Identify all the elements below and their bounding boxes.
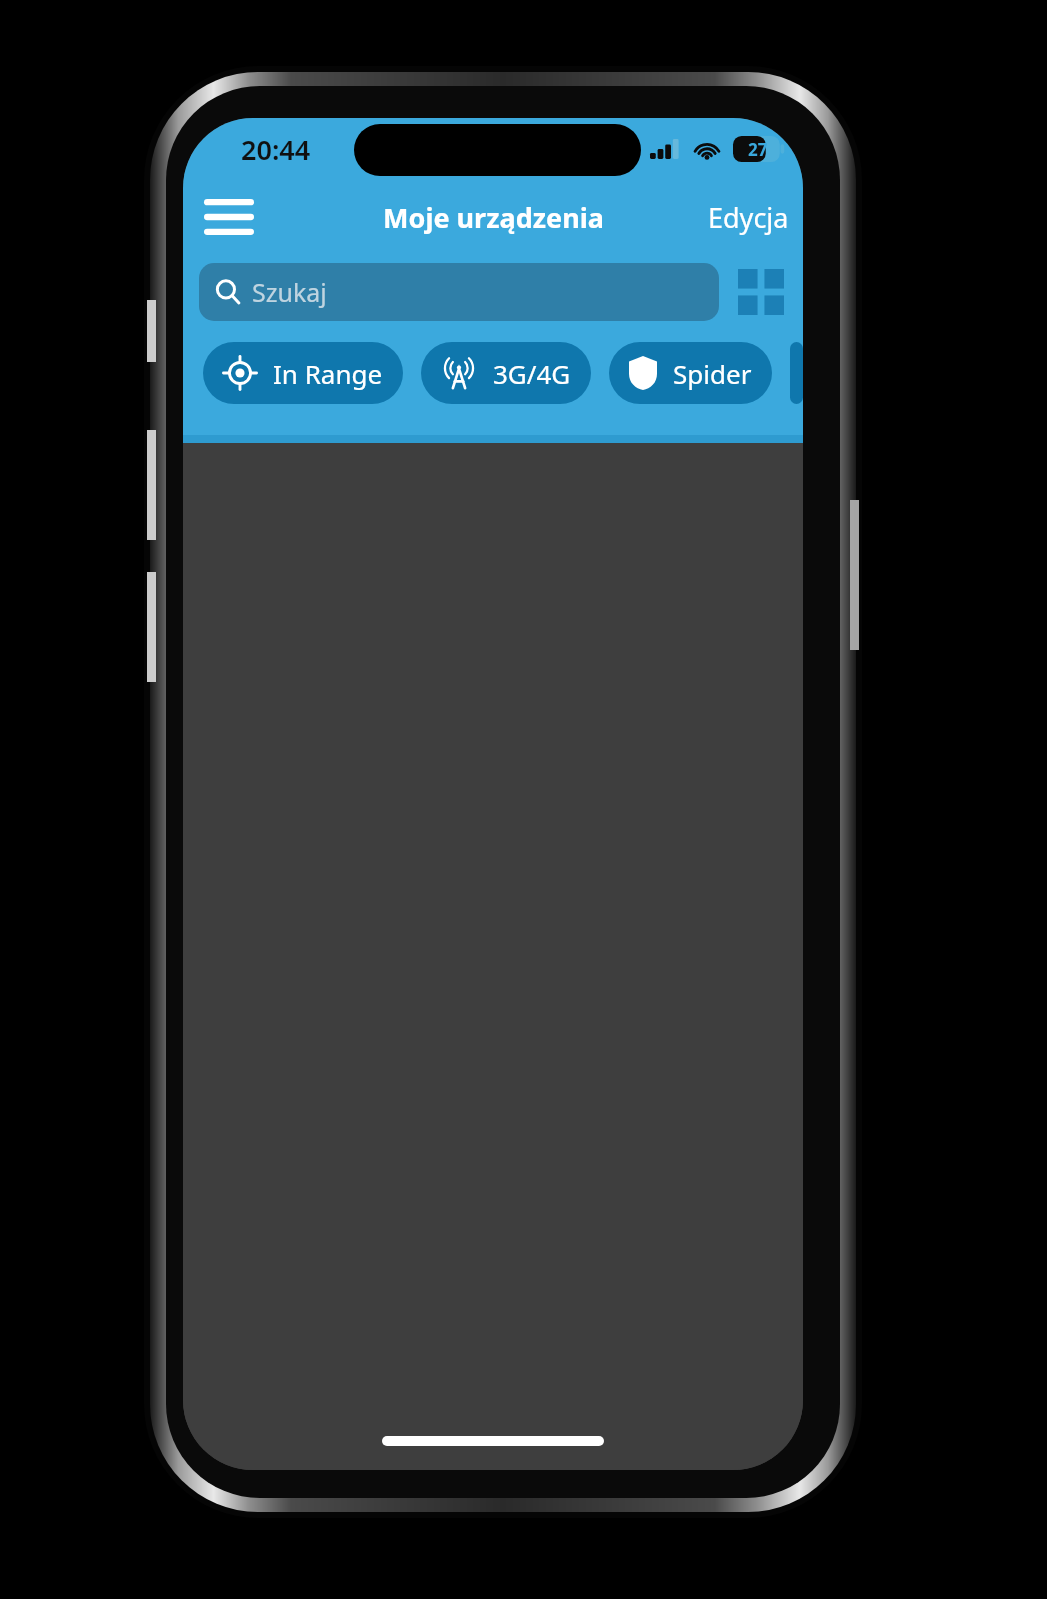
button[interactable]: In Range	[203, 342, 403, 404]
staticText: In Range	[273, 356, 383, 391]
staticText: 20:44	[241, 131, 311, 168]
button[interactable]: Spider	[609, 342, 772, 404]
button[interactable]: Filter	[790, 342, 803, 404]
staticText: Szukaj	[252, 275, 327, 309]
button[interactable]: Menu	[197, 185, 261, 249]
button[interactable]: Grid view	[733, 264, 789, 320]
staticText: Moje urządzenia	[383, 199, 604, 236]
staticText: 27	[748, 138, 768, 161]
staticText: Spider	[673, 356, 752, 391]
staticText: Edycja	[708, 199, 789, 236]
button[interactable]: 3G/4G	[421, 342, 591, 404]
button[interactable]: Szukaj	[199, 263, 719, 321]
button[interactable]: Edycja	[694, 189, 803, 246]
staticText: 3G/4G	[493, 356, 571, 391]
